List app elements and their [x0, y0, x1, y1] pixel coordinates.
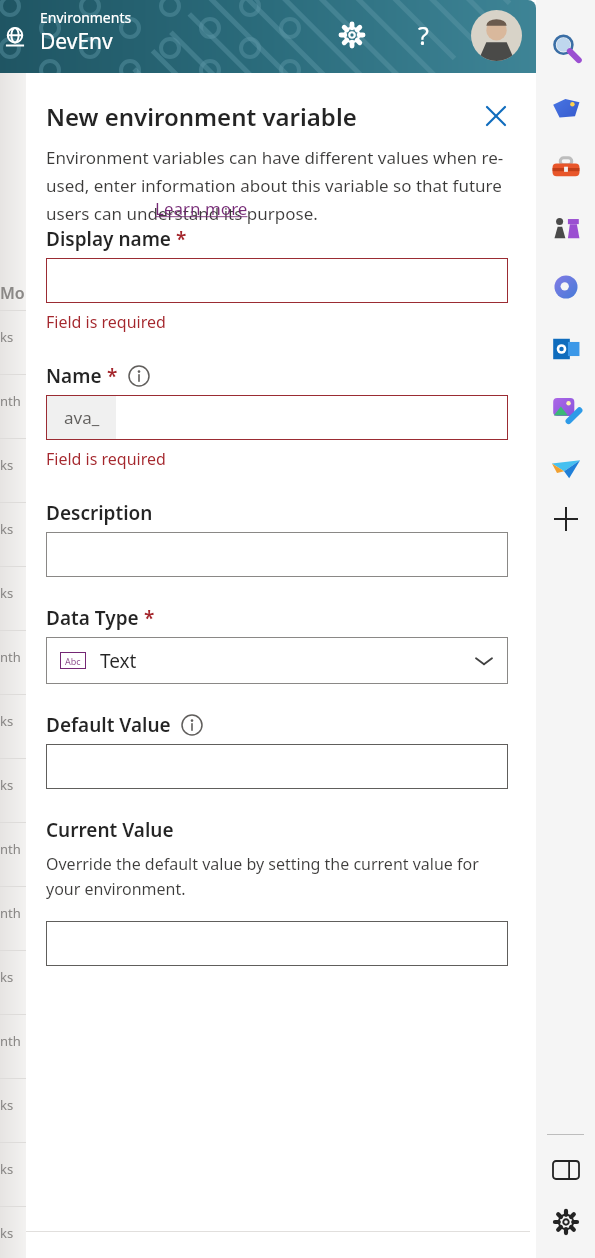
staticText: Text [100, 648, 474, 674]
button[interactable]: Search [550, 32, 582, 64]
button[interactable]: Copilot [550, 271, 582, 303]
staticText: ks [0, 1160, 14, 1178]
staticText: ks [0, 776, 14, 794]
button[interactable]: Home [0, 22, 30, 52]
staticText: nth [0, 1032, 21, 1050]
button[interactable]: Add [554, 507, 578, 531]
staticText: ks [0, 584, 14, 602]
staticText: Display name [46, 226, 171, 252]
button[interactable] [46, 532, 508, 577]
button[interactable]: Settings [334, 17, 370, 53]
staticText: ks [0, 328, 14, 346]
staticText: Default Value [46, 712, 171, 738]
staticText: DevEnv [40, 27, 113, 56]
staticText: Data Type [46, 605, 139, 631]
button[interactable]: Help [405, 17, 441, 53]
staticText: * [139, 605, 155, 631]
staticText: ava_ [64, 406, 100, 429]
staticText: Override the default value by setting th… [46, 853, 508, 899]
button[interactable]: Send [550, 452, 582, 484]
staticText: Field is required [46, 311, 166, 333]
staticText: Environments [40, 8, 132, 27]
button[interactable] [46, 744, 508, 789]
button[interactable]: Designer [550, 393, 582, 425]
staticText: nth [0, 904, 21, 922]
staticText: ? [418, 18, 429, 52]
staticText: Learn more [155, 197, 248, 220]
staticText: New environment variable [46, 100, 476, 133]
staticText: ks [0, 1096, 14, 1114]
staticText: Environment variables can have different… [46, 146, 508, 225]
button[interactable]: Account [471, 10, 522, 61]
button[interactable]: More info [181, 714, 203, 736]
staticText: Mo [0, 282, 25, 304]
button[interactable]: Tags [550, 92, 582, 124]
staticText: Abc [65, 655, 81, 667]
button[interactable]: Settings [552, 1208, 580, 1236]
button[interactable]: Toggle panel [553, 1157, 579, 1183]
staticText: ks [0, 456, 14, 474]
button[interactable]: Abc [46, 637, 508, 684]
button[interactable]: Outlook [550, 333, 582, 365]
button[interactable]: Close [476, 96, 516, 136]
button[interactable]: More info [128, 365, 150, 387]
staticText: ks [0, 712, 14, 730]
button[interactable] [46, 921, 508, 966]
staticText: Field is required [46, 448, 166, 470]
staticText: nth [0, 392, 21, 410]
staticText: Description [46, 500, 153, 526]
staticText: Name [46, 363, 102, 389]
staticText: ks [0, 1224, 14, 1242]
button[interactable]: Chess [550, 212, 582, 244]
button[interactable]: ava_ [46, 395, 508, 440]
staticText: * [102, 363, 118, 389]
button[interactable]: Learn more [155, 197, 248, 220]
staticText: nth [0, 840, 21, 858]
staticText: ks [0, 968, 14, 986]
staticText: ks [0, 520, 14, 538]
staticText: Current Value [46, 817, 174, 843]
staticText: * [171, 226, 187, 252]
staticText: nth [0, 648, 21, 666]
button[interactable]: Toolbox [550, 152, 582, 184]
button[interactable] [46, 258, 508, 303]
